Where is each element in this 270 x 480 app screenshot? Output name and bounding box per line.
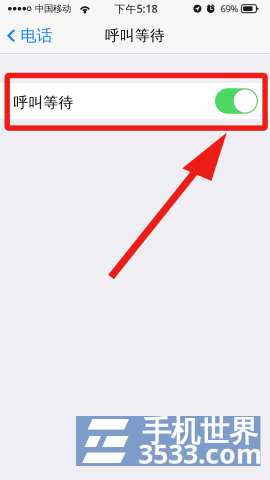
button[interactable]: 电话 — [0, 19, 61, 53]
staticText: 中国移动 — [35, 3, 71, 14]
staticText: 69% — [220, 2, 238, 15]
button[interactable]: 呼叫等待 — [0, 83, 270, 119]
staticText: 3533.com — [138, 436, 262, 471]
staticText: 呼叫等待 — [105, 27, 165, 45]
staticText: 下午5:18 — [115, 2, 158, 16]
staticText: 电话 — [21, 26, 53, 46]
staticText: 手机世界 — [142, 413, 258, 449]
staticText: 呼叫等待 — [13, 93, 73, 111]
